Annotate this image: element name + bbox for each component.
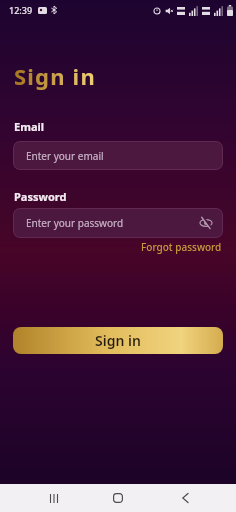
staticText: Enter your password — [26, 216, 124, 230]
staticText: 12:39 — [9, 4, 33, 16]
button[interactable]: Forgot password — [141, 240, 222, 254]
button[interactable] — [98, 484, 138, 512]
staticText: Sign in — [14, 61, 96, 91]
button[interactable]: Enter your email — [13, 141, 223, 170]
staticText: Password — [14, 189, 67, 204]
button[interactable] — [34, 484, 74, 512]
button[interactable] — [165, 484, 205, 512]
staticText: Sign in — [95, 331, 141, 350]
button[interactable]: Sign in — [13, 327, 223, 354]
staticText: Email — [14, 119, 45, 134]
staticText: Enter your email — [26, 149, 104, 163]
button[interactable]: Enter your password — [13, 208, 223, 238]
button[interactable] — [200, 217, 212, 229]
staticText: Forgot password — [141, 240, 222, 254]
